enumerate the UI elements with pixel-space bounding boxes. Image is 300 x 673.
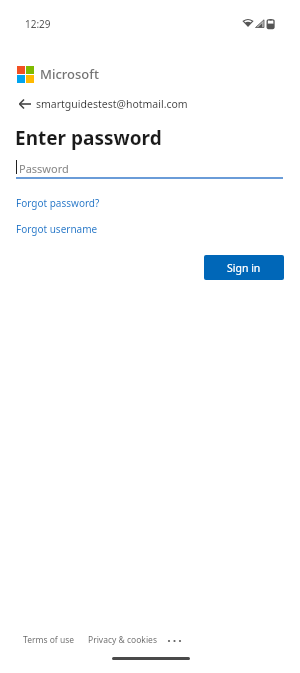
staticText: Forgot password? [16, 196, 100, 210]
staticText: smartguidestest@hotmail.com [36, 97, 188, 111]
staticText: Forgot username [16, 222, 98, 236]
staticText: 12:29 [25, 17, 51, 31]
staticText: Terms of use [23, 634, 75, 646]
staticText: Microsoft [40, 65, 99, 83]
button[interactable] [167, 635, 183, 645]
button[interactable]: Password [16, 158, 283, 180]
staticText: Enter password [15, 125, 162, 151]
staticText: Sign in [227, 261, 261, 275]
button[interactable]: smartguidestest@hotmail.com [19, 97, 188, 111]
staticText: Privacy & cookies [88, 634, 157, 646]
button[interactable]: Sign in [204, 255, 284, 280]
button[interactable]: Terms of use [23, 634, 75, 646]
button[interactable]: Forgot password? [16, 196, 100, 210]
staticText: Password [19, 161, 69, 176]
button[interactable]: Privacy & cookies [88, 634, 157, 646]
button[interactable]: Forgot username [16, 222, 98, 236]
